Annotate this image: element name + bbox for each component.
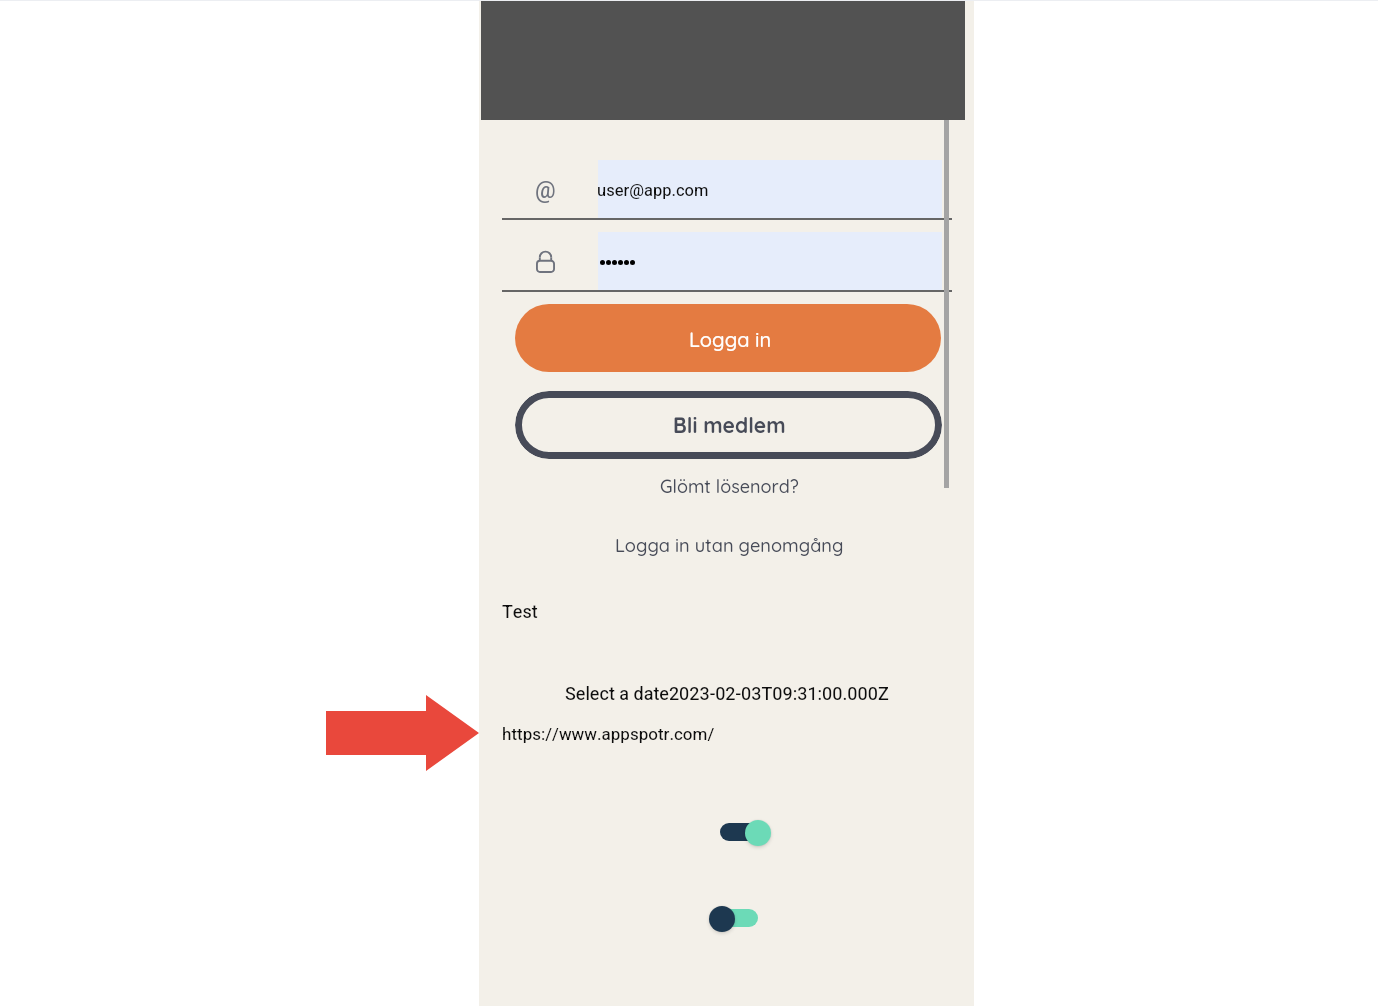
button[interactable]: Bli medlem — [515, 391, 942, 459]
staticText: Logga in — [689, 327, 772, 352]
staticText: Logga in utan genomgång — [615, 534, 844, 557]
staticText: Select a date2023-02-03T09:31:00.000Z — [565, 683, 889, 704]
button[interactable]: E-postadress — [502, 160, 952, 219]
staticText: Glömt lösenord? — [660, 475, 799, 498]
button[interactable]: Glömt lösenord? — [607, 472, 851, 500]
button[interactable]: Lösenord — [502, 232, 952, 291]
button[interactable]: Logga in — [515, 304, 941, 372]
staticText: user@app.com — [598, 181, 709, 200]
button[interactable]: https://www.appspotr.com/ — [502, 724, 715, 744]
other: Markörpil — [0, 0, 1378, 1006]
button[interactable]: Växla inställning 1 — [708, 817, 770, 848]
staticText: Bli medlem — [673, 412, 786, 438]
button[interactable]: Logga in utan genomgång — [607, 531, 851, 559]
button[interactable]: Växla inställning 2 — [708, 903, 770, 934]
staticText: @ — [535, 177, 556, 204]
staticText: Test — [502, 601, 538, 622]
